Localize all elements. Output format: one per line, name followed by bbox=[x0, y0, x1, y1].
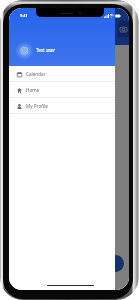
staticText: Test user bbox=[36, 47, 56, 53]
button[interactable]: Add bbox=[107, 255, 124, 272]
staticText: Calendar bbox=[26, 71, 46, 77]
staticText: My Profile bbox=[26, 103, 48, 109]
button[interactable]: Home bbox=[9, 82, 115, 98]
staticText: 9:41 bbox=[20, 13, 28, 18]
staticText: Home bbox=[26, 87, 40, 93]
button[interactable]: My Profile bbox=[9, 98, 115, 114]
button[interactable]: Calendar bbox=[9, 66, 115, 82]
